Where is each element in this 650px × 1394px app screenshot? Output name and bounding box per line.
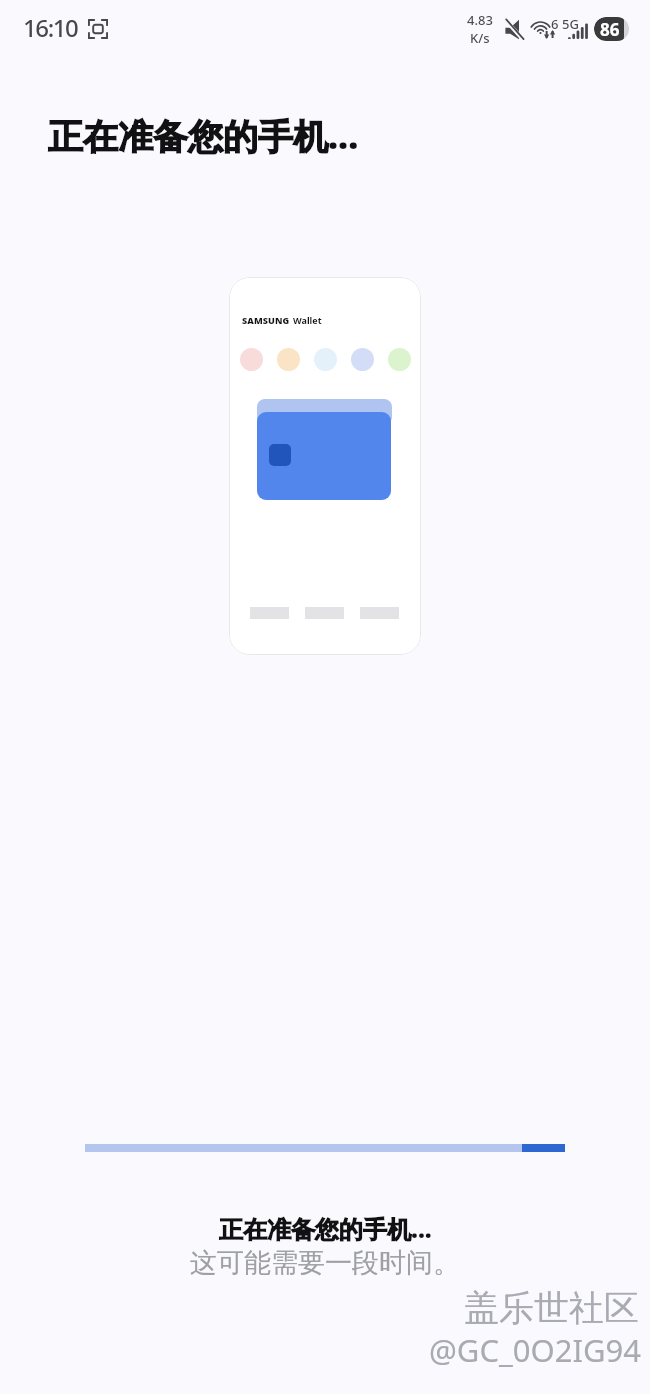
staticText: 16:10 xyxy=(23,11,78,44)
button[interactable] xyxy=(388,348,411,371)
staticText: 86 xyxy=(600,18,620,41)
other: Wi-Fi 6 connected xyxy=(533,19,555,39)
button[interactable]: Payment card xyxy=(257,412,391,500)
button[interactable] xyxy=(277,348,300,371)
other: Sound off xyxy=(505,19,525,40)
staticText: @GC_0O2IG94 xyxy=(429,1329,642,1371)
button[interactable] xyxy=(240,348,263,371)
button[interactable]: Smart capture xyxy=(88,19,108,39)
other: Mobile signal xyxy=(568,20,590,39)
staticText: SAMSUNG xyxy=(242,314,290,326)
button[interactable] xyxy=(314,348,337,371)
staticText: 正在准备您的手机... xyxy=(48,112,359,160)
staticText: 正在准备您的手机... xyxy=(219,1212,432,1245)
staticText: Wallet xyxy=(293,314,322,326)
staticText: 盖乐世社区 xyxy=(464,1286,639,1330)
staticText: K/s xyxy=(470,29,490,47)
other: Battery 86 percent xyxy=(594,17,629,41)
other: Samsung Wallet illustration xyxy=(229,277,421,655)
staticText: 这可能需要一段时间。 xyxy=(190,1246,460,1280)
staticText: 4.83 xyxy=(467,11,493,29)
staticText: 6 xyxy=(551,15,559,33)
button[interactable] xyxy=(351,348,374,371)
button[interactable]: 16:10 xyxy=(23,11,78,44)
staticText: 5G xyxy=(562,15,579,33)
other: Progress xyxy=(85,1144,565,1152)
